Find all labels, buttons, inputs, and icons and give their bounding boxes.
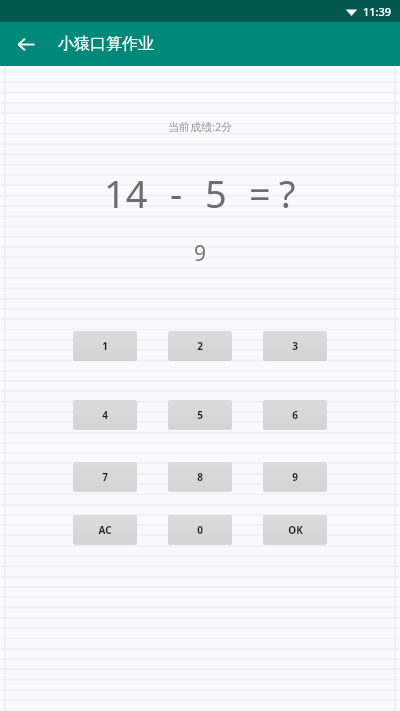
- staticText: 14: [104, 167, 148, 219]
- button[interactable]: 6: [263, 399, 327, 430]
- button[interactable]: 7: [73, 461, 137, 492]
- button[interactable]: 1: [73, 330, 137, 361]
- staticText: 8: [197, 470, 203, 484]
- staticText: 2: [197, 339, 203, 353]
- button[interactable]: 2: [168, 330, 232, 361]
- staticText: 小猿口算作业: [58, 34, 154, 54]
- button[interactable]: Back: [8, 26, 44, 62]
- staticText: 5: [205, 167, 227, 219]
- staticText: -: [170, 167, 183, 219]
- button[interactable]: 4: [73, 399, 137, 430]
- staticText: 9: [292, 470, 298, 484]
- staticText: 3: [292, 339, 298, 353]
- staticText: 11:39: [363, 4, 392, 19]
- staticText: 当前成绩:2分: [168, 119, 233, 134]
- staticText: 5: [197, 408, 203, 422]
- button[interactable]: 5: [168, 399, 232, 430]
- staticText: 9: [194, 239, 207, 268]
- button[interactable]: 0: [168, 514, 232, 545]
- button[interactable]: OK: [263, 514, 327, 545]
- staticText: =: [249, 167, 271, 219]
- staticText: 6: [292, 408, 298, 422]
- staticText: 1: [102, 339, 108, 353]
- staticText: AC: [98, 523, 112, 537]
- button[interactable]: 9: [263, 461, 327, 492]
- button[interactable]: 8: [168, 461, 232, 492]
- staticText: 4: [102, 408, 108, 422]
- button[interactable]: AC: [73, 514, 137, 545]
- staticText: 7: [102, 470, 108, 484]
- staticText: OK: [288, 523, 303, 537]
- button[interactable]: 3: [263, 330, 327, 361]
- staticText: ?: [279, 167, 296, 219]
- staticText: 0: [197, 523, 203, 537]
